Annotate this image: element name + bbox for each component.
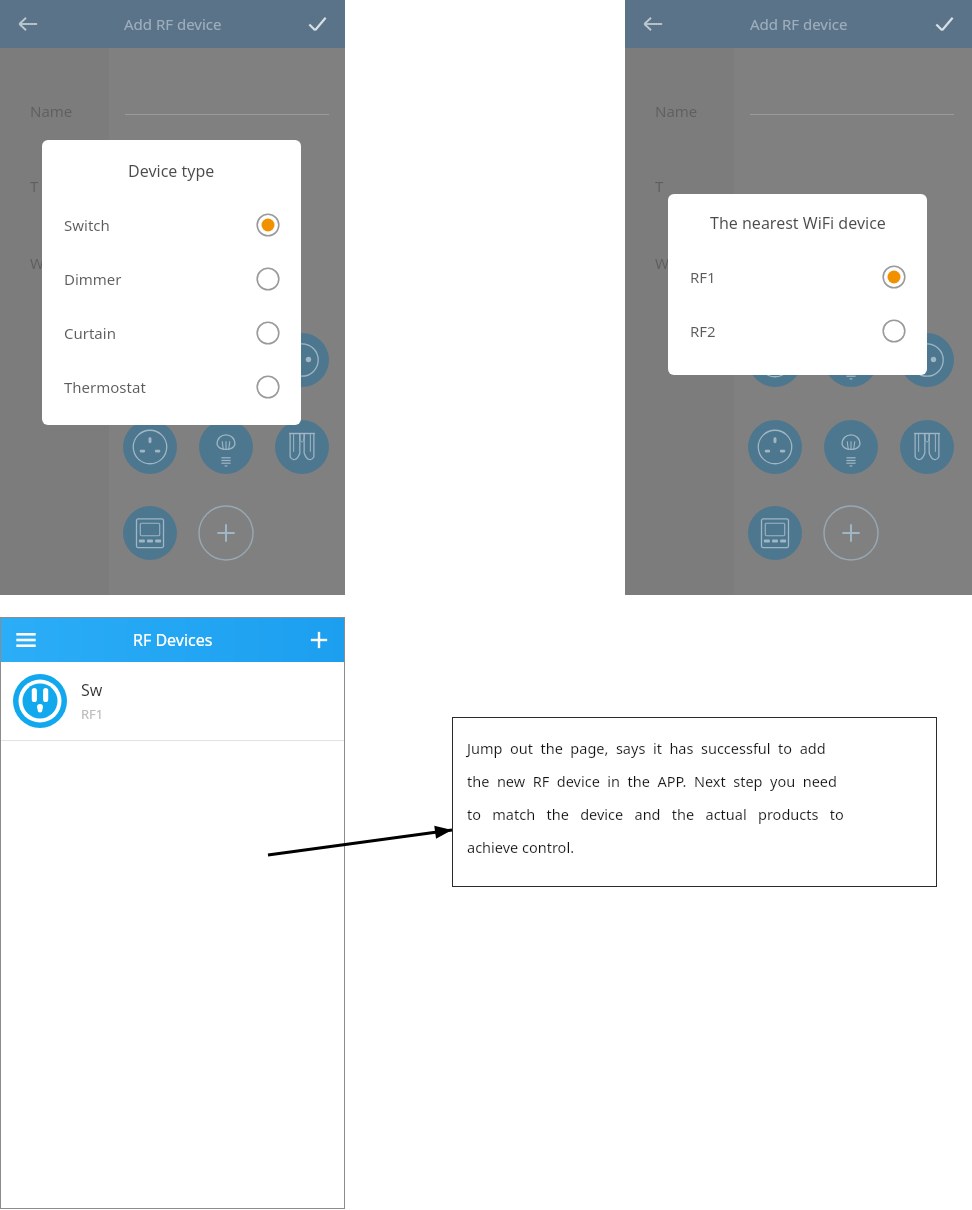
button[interactable]: RF1 <box>668 250 927 304</box>
staticText: Name <box>655 101 698 121</box>
staticText: RF1 <box>81 705 104 723</box>
staticText: to match the device and the actual produ… <box>467 804 844 824</box>
staticText: Device type <box>128 160 215 182</box>
staticText: the new RF device in the APP. Next step … <box>467 771 837 791</box>
staticText: Add RF device <box>124 14 222 34</box>
staticText: The nearest WiFi device <box>710 212 886 234</box>
staticText: RF Devices <box>133 629 213 651</box>
button[interactable]: Back <box>625 0 681 48</box>
staticText: RF2 <box>690 321 716 341</box>
staticText: Curtain <box>64 323 116 343</box>
staticText: Dimmer <box>64 269 122 289</box>
button[interactable]: Back <box>0 0 56 48</box>
staticText: T <box>655 176 664 196</box>
staticText: Sw <box>81 679 103 701</box>
staticText: achieve control. <box>467 837 575 857</box>
button[interactable]: Sw <box>0 662 345 740</box>
button[interactable]: Confirm <box>916 0 972 48</box>
staticText: WiFi <box>30 253 60 273</box>
staticText: WiFi <box>655 253 685 273</box>
button[interactable]: Add device <box>293 617 345 662</box>
button[interactable]: Curtain <box>42 306 301 360</box>
staticText: Add RF device <box>750 14 848 34</box>
staticText: Name <box>30 101 73 121</box>
button[interactable]: Switch <box>42 198 301 252</box>
button[interactable]: RF2 <box>668 304 927 358</box>
button[interactable]: Thermostat <box>42 360 301 414</box>
button[interactable]: Confirm <box>289 0 345 48</box>
staticText: RF1 <box>690 267 716 287</box>
staticText: Thermostat <box>64 377 146 397</box>
staticText: T <box>30 176 39 196</box>
button[interactable]: Menu <box>0 617 52 662</box>
staticText: Switch <box>64 215 110 235</box>
button[interactable]: Dimmer <box>42 252 301 306</box>
staticText: Jump out the page, says it has successfu… <box>467 738 826 758</box>
